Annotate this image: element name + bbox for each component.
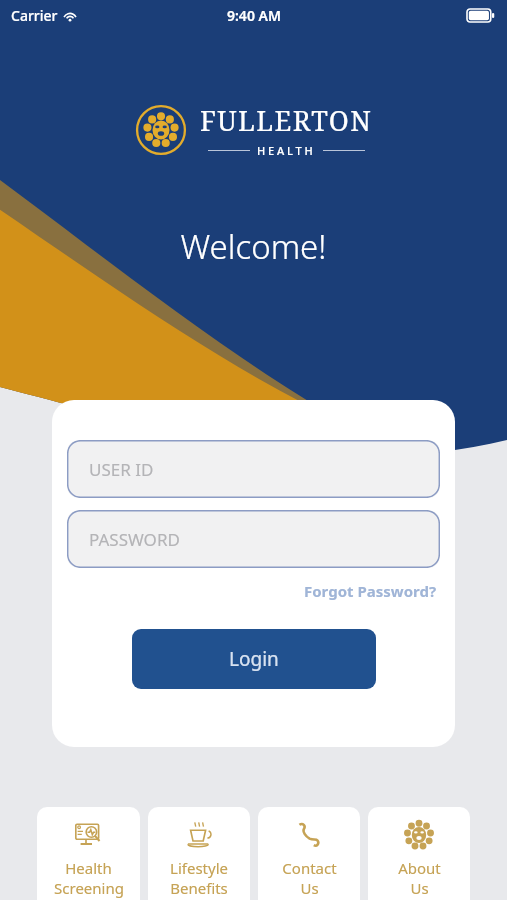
button[interactable]: Lifestyle Benefits [148, 807, 250, 900]
button[interactable]: Contact Us [258, 807, 360, 900]
staticText: Welcome! [0, 224, 507, 269]
staticText: About [398, 858, 441, 878]
staticText: Forgot Password? [304, 581, 437, 601]
staticText: Login [229, 646, 279, 672]
staticText: USER ID [89, 458, 154, 481]
staticText: Us [300, 878, 319, 898]
staticText: Lifestyle [170, 858, 228, 878]
staticText: 9:40 AM [227, 6, 281, 25]
staticText: Us [410, 878, 429, 898]
other: Health Screening [74, 820, 104, 850]
staticText: Health [65, 858, 112, 878]
staticText: Contact [282, 858, 337, 878]
staticText: Benefits [170, 878, 228, 898]
staticText: HEALTH [257, 143, 316, 158]
other: Contact Us [294, 820, 324, 850]
staticText: Screening [54, 878, 124, 898]
staticText: PASSWORD [89, 528, 180, 551]
button[interactable]: Forgot Password? [301, 579, 440, 603]
button[interactable]: USER ID [67, 440, 440, 498]
button[interactable]: PASSWORD [67, 510, 440, 568]
other: About Us [404, 820, 434, 850]
staticText: FULLERTON [200, 102, 373, 139]
button[interactable]: About Us [368, 807, 470, 900]
button[interactable]: Health Screening [37, 807, 140, 900]
staticText: Carrier [11, 6, 58, 25]
other: Lifestyle Benefits [184, 820, 214, 850]
button[interactable]: Login [132, 629, 376, 689]
